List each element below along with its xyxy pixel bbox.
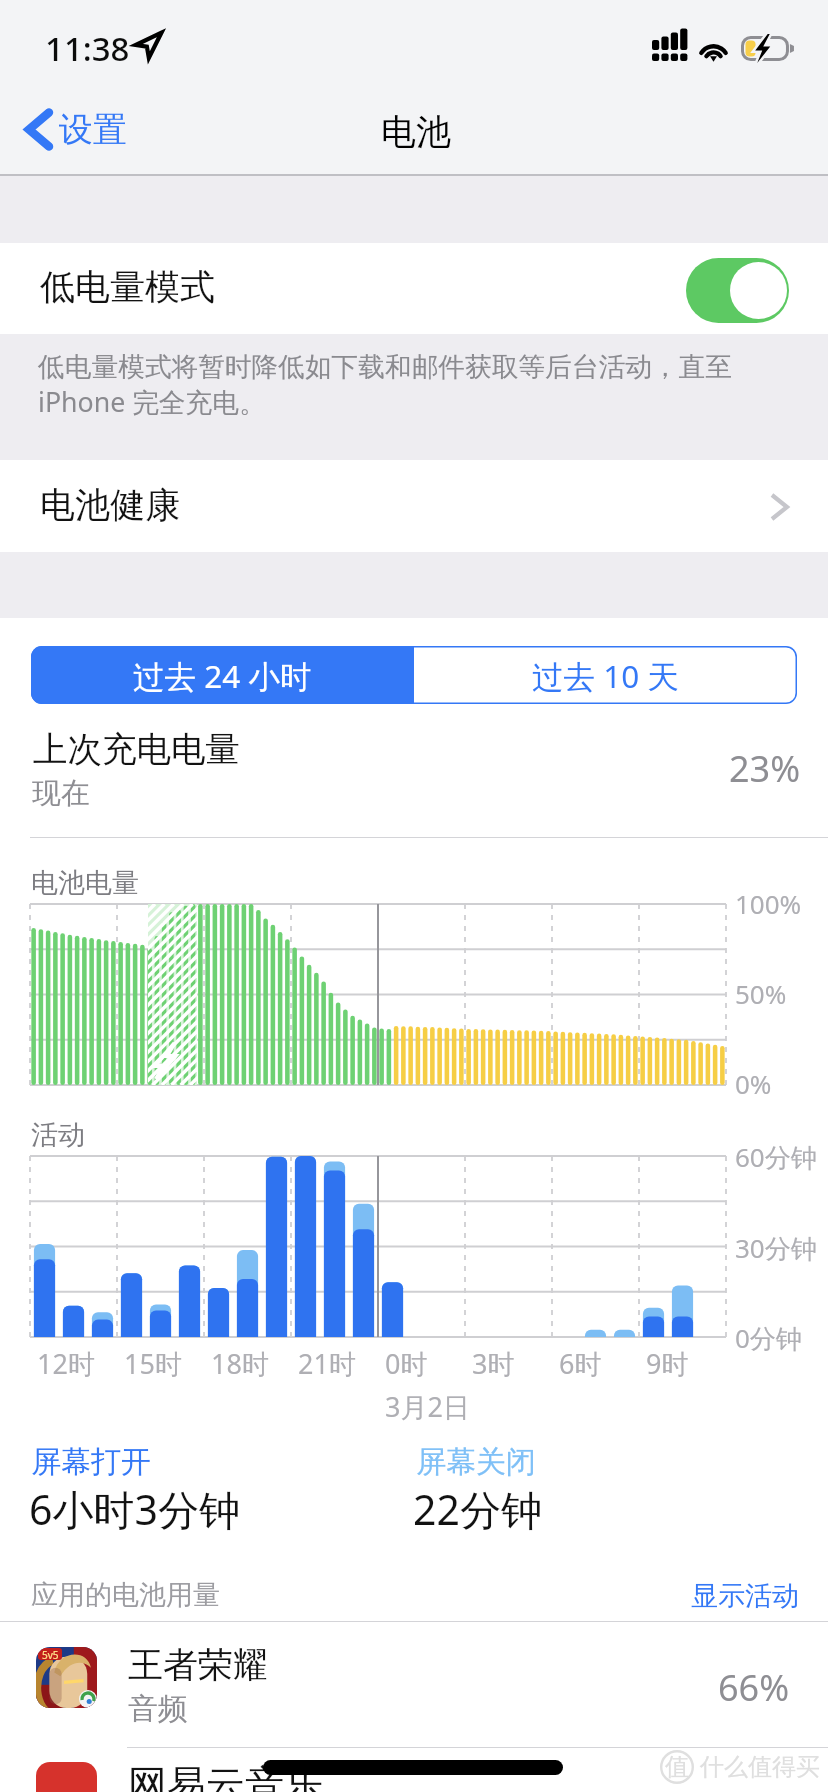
staticText: 现在 xyxy=(32,775,90,812)
staticText: 30分钟 xyxy=(735,1230,817,1266)
staticText: 6小时3分钟 xyxy=(29,1481,240,1537)
staticText: 3时 xyxy=(472,1345,515,1382)
staticText: 过去 24 小时 xyxy=(133,654,312,697)
staticText: 电池健康 xyxy=(40,483,180,527)
staticText: 应用的电池用量 xyxy=(31,1578,220,1612)
staticText: 3月2日 xyxy=(385,1388,470,1425)
button[interactable]: 设置 xyxy=(20,104,133,155)
staticText: 电池 xyxy=(381,110,451,154)
button[interactable]: 5v5 xyxy=(0,1622,828,1748)
staticText: 电池电量 xyxy=(31,866,139,900)
staticText: 什么值得买 xyxy=(700,1752,820,1782)
button[interactable]: 低电量模式 xyxy=(0,243,828,334)
staticText: 0时 xyxy=(385,1345,428,1382)
button[interactable]: 显示活动 xyxy=(687,1575,803,1617)
staticText: 上次充电电量 xyxy=(33,728,240,771)
staticText: 15时 xyxy=(124,1345,182,1382)
staticText: 音频 xyxy=(128,1690,188,1728)
button[interactable]: 过去 10 天 xyxy=(414,646,797,704)
staticText: 5v5 xyxy=(42,1648,59,1660)
staticText: 过去 10 天 xyxy=(532,654,679,697)
staticText: 值 xyxy=(665,1752,689,1782)
button[interactable]: 网易云音乐 xyxy=(0,1748,828,1792)
staticText: 低电量模式将暂时降低如下载和邮件获取等后台活动，直至 iPhone 完全充电。 xyxy=(38,350,732,420)
staticText: 活动 xyxy=(31,1118,85,1152)
staticText: 21时 xyxy=(298,1345,356,1382)
staticText: 100% xyxy=(735,886,802,921)
staticText: 低电量模式 xyxy=(40,265,215,309)
button[interactable]: 电池健康 xyxy=(0,460,828,552)
staticText: 18时 xyxy=(211,1345,269,1382)
staticText: 设置 xyxy=(59,108,127,151)
staticText: 显示活动 xyxy=(691,1579,799,1613)
staticText: 66% xyxy=(718,1663,790,1712)
staticText: 60分钟 xyxy=(735,1139,817,1175)
staticText: 0% xyxy=(735,1066,772,1101)
staticText: 0分钟 xyxy=(735,1320,802,1356)
staticText: 屏幕关闭 xyxy=(416,1443,536,1481)
staticText: 王者荣耀 xyxy=(128,1643,268,1687)
staticText: 网易云音乐 xyxy=(128,1760,323,1792)
staticText: 屏幕打开 xyxy=(31,1443,151,1481)
button[interactable]: Low Power Mode toggle xyxy=(686,258,789,323)
staticText: 11:38 xyxy=(45,26,130,71)
staticText: 9时 xyxy=(646,1345,689,1382)
staticText: 50% xyxy=(735,976,787,1011)
staticText: 12时 xyxy=(37,1345,95,1382)
staticText: 22分钟 xyxy=(413,1481,542,1537)
staticText: 23% xyxy=(729,744,801,793)
button[interactable]: 过去 24 小时 xyxy=(31,646,414,704)
staticText: 6时 xyxy=(559,1345,602,1382)
